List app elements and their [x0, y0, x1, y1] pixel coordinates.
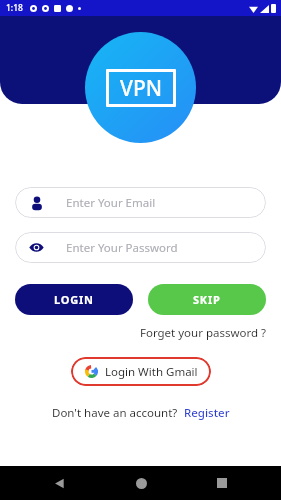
staticText: Login With Gmail [105, 364, 198, 380]
button[interactable]: Enter Your Password [15, 232, 266, 263]
button[interactable]: Register [184, 405, 230, 421]
staticText: Don't have an account? [52, 405, 178, 421]
button[interactable]: Login With Gmail [71, 357, 211, 386]
staticText: LOGIN [54, 292, 94, 307]
button[interactable]: Enter Your Email [15, 187, 266, 218]
staticText: 1:18 [6, 2, 23, 14]
staticText: Enter Your Password [66, 240, 178, 256]
button[interactable]: Back [48, 472, 70, 494]
staticText: Enter Your Email [66, 195, 156, 211]
button[interactable]: Recents [211, 472, 233, 494]
staticText: Register [184, 405, 230, 421]
button[interactable]: Home [130, 472, 152, 494]
button[interactable]: Forget your password ? [0, 325, 281, 341]
staticText: VPN [120, 74, 163, 103]
button[interactable]: SKIP [148, 284, 266, 315]
staticText: SKIP [193, 292, 221, 307]
button[interactable]: LOGIN [15, 284, 133, 315]
